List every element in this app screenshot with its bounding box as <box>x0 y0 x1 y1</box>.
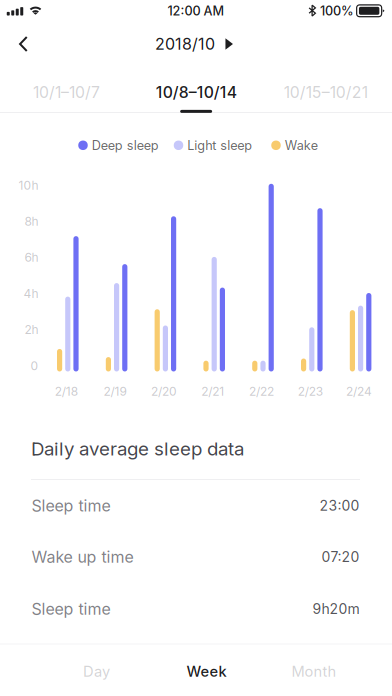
staticText: Deep sleep <box>92 138 159 153</box>
staticText: 2/23 <box>298 384 323 399</box>
staticText: 2/22 <box>249 384 274 399</box>
staticText: Light sleep <box>187 138 252 153</box>
staticText: Day <box>83 663 110 680</box>
staticText: 10/15–10/21 <box>284 83 368 102</box>
staticText: 07:20 <box>321 548 359 565</box>
button[interactable]: Month <box>262 646 366 696</box>
staticText: 6h <box>25 250 39 265</box>
staticText: Daily average sleep data <box>31 437 244 460</box>
staticText: 8h <box>25 214 39 229</box>
button[interactable]: Week <box>154 646 258 696</box>
staticText: 10h <box>19 178 39 192</box>
staticText: 100% <box>320 3 354 18</box>
staticText: 2/20 <box>151 384 177 399</box>
staticText: 9h20m <box>312 600 359 617</box>
staticText: 0 <box>31 358 39 373</box>
staticText: 2/24 <box>346 384 372 399</box>
button[interactable]: 10/15–10/21 <box>260 69 391 113</box>
staticText: Sleep time <box>31 599 110 619</box>
staticText: 2/21 <box>201 384 224 399</box>
button[interactable]: Sleep time <box>31 480 359 531</box>
staticText: Week <box>186 663 226 680</box>
button[interactable]: 10/8–10/14 <box>131 69 261 113</box>
staticText: 2/18 <box>55 384 78 399</box>
staticText: Wake <box>285 138 318 153</box>
button[interactable]: 2018/10 <box>155 27 233 61</box>
staticText: 12:00 AM <box>167 3 224 18</box>
staticText: 10/1–10/7 <box>33 83 100 102</box>
button[interactable]: Back <box>5 25 41 63</box>
staticText: Sleep time <box>31 496 110 515</box>
staticText: 4h <box>24 286 39 301</box>
staticText: 2/19 <box>104 384 127 399</box>
staticText: Wake up time <box>31 547 133 567</box>
staticText: 10/8–10/14 <box>156 83 237 102</box>
staticText: 2h <box>25 322 39 337</box>
button[interactable]: 10/1–10/7 <box>1 69 132 113</box>
staticText: 2018/10 <box>155 34 215 54</box>
staticText: 23:00 <box>319 497 359 514</box>
button[interactable]: Day <box>44 646 148 696</box>
staticText: Month <box>291 663 336 680</box>
button[interactable]: Sleep time <box>31 583 359 634</box>
button[interactable]: Wake up time <box>31 531 359 582</box>
